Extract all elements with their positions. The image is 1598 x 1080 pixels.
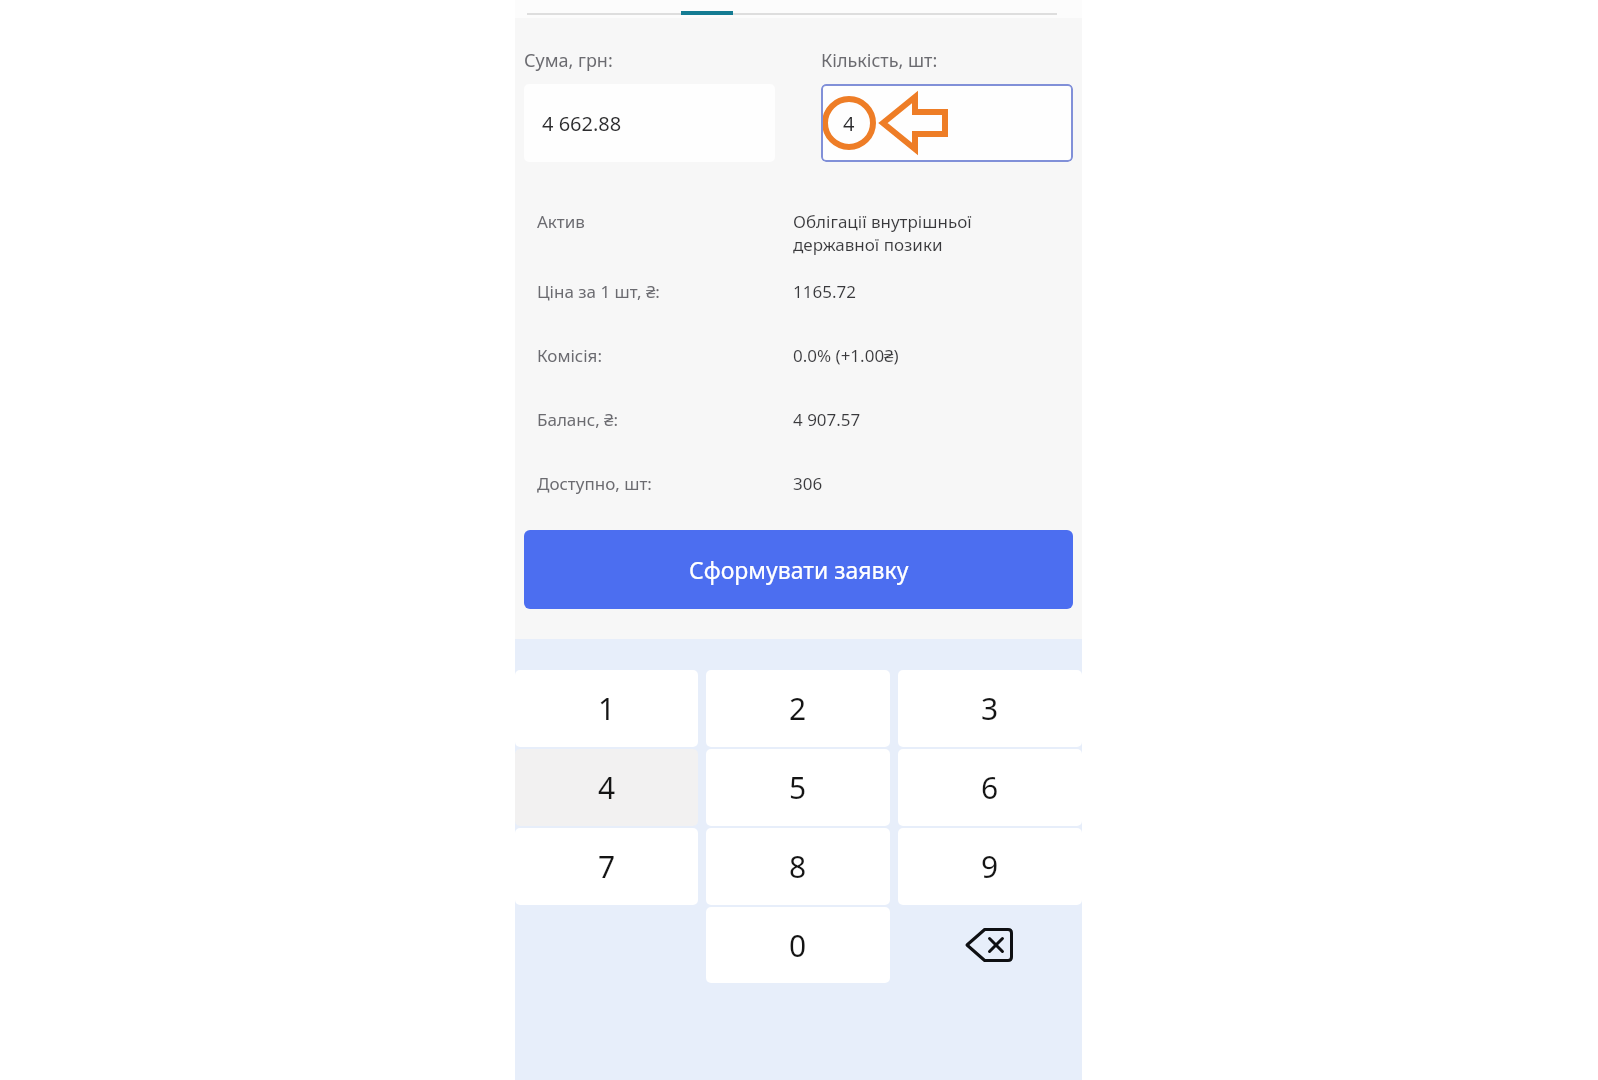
button[interactable]: 8 (706, 828, 890, 905)
button[interactable]: Backspace (898, 907, 1082, 983)
button[interactable]: 5 (706, 749, 890, 826)
button[interactable]: 4 (821, 84, 1073, 162)
staticText: 2 (789, 688, 807, 729)
staticText: 1165.72 (793, 280, 856, 303)
staticText: 6 (981, 767, 999, 808)
button[interactable]: 7 (515, 828, 698, 905)
staticText: Баланс, ₴: (537, 408, 619, 431)
staticText: 0 (789, 925, 807, 966)
staticText: Сформувати заявку (689, 554, 909, 585)
button[interactable]: 0 (706, 907, 890, 983)
staticText: 0.0% (+1.00₴) (793, 344, 899, 367)
button[interactable]: 4 (515, 749, 698, 826)
staticText: Сума, грн: (524, 48, 613, 73)
staticText: 4 (843, 110, 855, 137)
staticText: 4 907.57 (793, 408, 861, 431)
staticText: Кількість, шт: (821, 48, 938, 73)
staticText: 5 (789, 767, 807, 808)
staticText: 3 (981, 688, 999, 729)
staticText: 9 (981, 846, 999, 887)
button[interactable]: Сформувати заявку (524, 530, 1073, 609)
staticText: 306 (793, 472, 823, 495)
button[interactable]: 2 (706, 670, 890, 747)
button[interactable]: 4 662.88 (524, 84, 775, 162)
button[interactable]: 1 (515, 670, 698, 747)
staticText: 4 (598, 767, 616, 808)
staticText: Облігації внутрішньої державної позики (793, 210, 972, 256)
staticText: 1 (598, 688, 616, 729)
staticText: 8 (789, 846, 807, 887)
staticText: Комісія: (537, 344, 602, 367)
staticText: Ціна за 1 шт, ₴: (537, 280, 660, 303)
staticText: Актив (537, 210, 585, 233)
button[interactable]: 3 (898, 670, 1082, 747)
staticText: Доступно, шт: (537, 472, 652, 495)
button[interactable]: 9 (898, 828, 1082, 905)
staticText: 4 662.88 (542, 110, 622, 137)
staticText: 7 (598, 846, 616, 887)
button[interactable]: 6 (898, 749, 1082, 826)
